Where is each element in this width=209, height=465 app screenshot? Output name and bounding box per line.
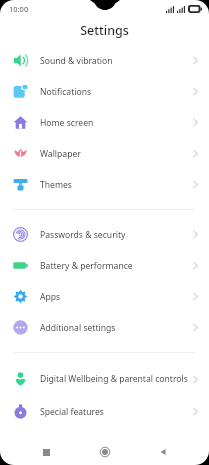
staticText: Sound & vibration xyxy=(40,55,189,67)
staticText: Passwords & security xyxy=(40,229,189,241)
button[interactable]: Sound & vibration xyxy=(0,45,209,76)
button[interactable]: Passwords & security xyxy=(0,219,209,250)
staticText: Wallpaper xyxy=(40,148,189,160)
staticText: Special features xyxy=(40,406,189,418)
button[interactable]: Special features xyxy=(0,396,209,427)
staticText: Digital Wellbeing & parental controls xyxy=(40,373,189,385)
staticText: 10:00 xyxy=(9,4,29,14)
button[interactable]: Back xyxy=(150,439,176,465)
button[interactable]: Home xyxy=(92,439,118,465)
staticText: Notifications xyxy=(40,86,189,98)
button[interactable]: Additional settings xyxy=(0,312,209,343)
staticText: Themes xyxy=(40,179,189,191)
button[interactable]: Notifications xyxy=(0,76,209,107)
staticText: Home screen xyxy=(40,117,189,129)
staticText: Settings xyxy=(80,22,129,39)
button[interactable]: Wallpaper xyxy=(0,138,209,169)
button[interactable]: Apps xyxy=(0,281,209,312)
button[interactable]: Digital Wellbeing & parental controls xyxy=(0,362,209,396)
staticText: Apps xyxy=(40,291,189,303)
button[interactable]: Recents xyxy=(33,439,59,465)
staticText: Additional settings xyxy=(40,322,189,334)
button[interactable]: Battery & performance xyxy=(0,250,209,281)
button[interactable]: Home screen xyxy=(0,107,209,138)
button[interactable]: Themes xyxy=(0,169,209,200)
staticText: Battery & performance xyxy=(40,260,189,272)
